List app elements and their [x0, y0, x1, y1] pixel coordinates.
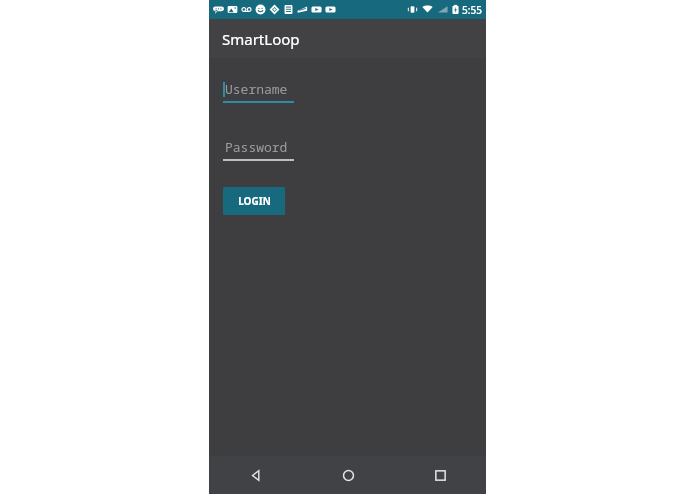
staticText: 5:55 — [462, 3, 482, 17]
staticText: LOGIN — [238, 194, 271, 208]
button[interactable]: Username — [223, 78, 294, 103]
button[interactable]: Recent apps — [394, 456, 486, 494]
button[interactable]: Back — [209, 456, 302, 494]
staticText: SmartLoop — [222, 29, 300, 49]
staticText: Username — [225, 80, 288, 98]
button[interactable]: LOGIN — [223, 187, 285, 215]
staticText: Password — [225, 138, 288, 156]
button[interactable]: Home — [302, 456, 394, 494]
button[interactable]: Password — [223, 136, 294, 161]
